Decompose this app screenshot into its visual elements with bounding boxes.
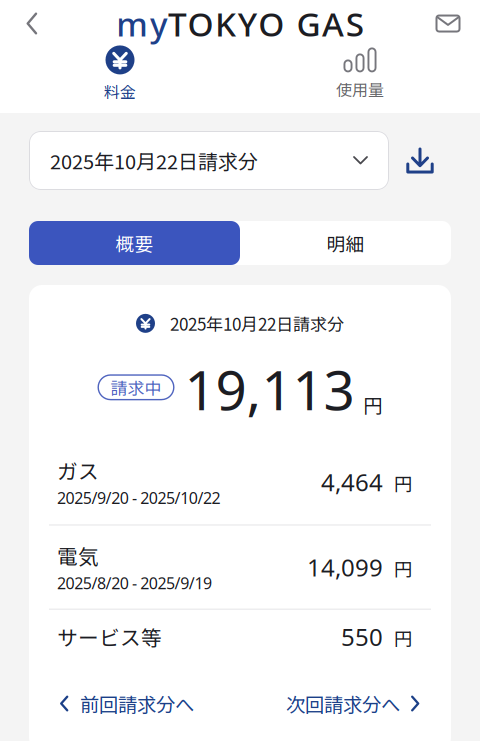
staticText: 14,099 [307,551,383,583]
staticText: 電気 [57,540,99,570]
staticText: 4,464 [321,466,383,498]
button[interactable]: 2025年10月22日請求分 [29,131,389,190]
staticText: 円 [394,555,413,582]
button[interactable]: 概要 [29,221,240,265]
staticText: 料金 [104,79,136,103]
staticText: 次回請求分へ [286,689,400,717]
staticText: サービス等 [57,622,162,651]
button[interactable]: Back [10,1,54,45]
button[interactable]: 次回請求分へ [286,681,420,725]
staticText: 円 [394,624,413,651]
button[interactable]: Download [389,131,451,190]
button[interactable]: 使用量 [240,47,480,101]
staticText: 概要 [115,229,153,256]
staticText: 使用量 [336,77,384,101]
staticText: 2025/8/20 - 2025/9/19 [57,572,212,594]
staticText: TOKYO GAS [168,1,364,46]
staticText: 請求中 [110,375,161,399]
staticText: 2025年10月22日請求分 [50,146,258,175]
staticText: 550 [341,621,383,653]
staticText: 明細 [326,229,364,256]
staticText: ガス [57,455,99,485]
staticText: my [116,1,168,46]
button[interactable]: 明細 [240,221,451,265]
staticText: 2025年10月22日請求分 [170,311,344,336]
button[interactable]: 前回請求分へ [60,681,194,725]
staticText: 2025/9/20 - 2025/10/22 [57,487,221,508]
staticText: 前回請求分へ [80,689,194,717]
button[interactable]: 料金 [0,45,240,103]
staticText: 円 [363,390,382,418]
button[interactable]: Messages [426,1,470,45]
staticText: 円 [394,470,413,497]
staticText: 19,113 [184,353,354,425]
